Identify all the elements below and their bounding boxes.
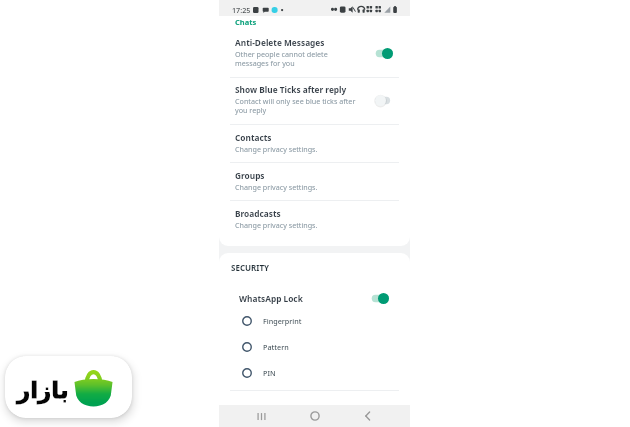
- button[interactable]: Bazaar: [5, 356, 132, 418]
- staticText: Contact will only see blue ticks after y…: [235, 96, 356, 116]
- button[interactable]: Recents: [250, 405, 272, 427]
- staticText: Change privacy settings.: [235, 144, 318, 154]
- button[interactable]: Show Blue Ticks after reply: [219, 78, 410, 124]
- button[interactable]: Broadcasts: [219, 201, 410, 238]
- staticText: Groups: [235, 170, 265, 181]
- staticText: Anti-Delete Messages: [235, 37, 325, 48]
- staticText: Pattern: [263, 342, 289, 352]
- button[interactable]: Groups: [219, 163, 410, 200]
- button[interactable]: Home: [304, 405, 326, 427]
- staticText: WhatsApp Lock: [239, 293, 371, 304]
- button[interactable]: Anti-Delete Messages: [219, 31, 410, 77]
- staticText: Chats: [235, 17, 257, 27]
- staticText: SECURITY: [231, 262, 270, 273]
- button[interactable]: PIN: [219, 360, 410, 386]
- button[interactable]: On: [375, 48, 393, 59]
- staticText: Change privacy settings.: [235, 182, 318, 192]
- staticText: Change privacy settings.: [235, 220, 318, 230]
- button[interactable]: Off: [375, 95, 393, 106]
- button[interactable]: Contacts: [219, 125, 410, 162]
- button[interactable]: Back: [357, 405, 379, 427]
- staticText: بازار: [17, 377, 69, 404]
- staticText: 17:25: [232, 5, 251, 14]
- staticText: Other people cannot delete messages for …: [235, 49, 328, 69]
- staticText: Broadcasts: [235, 208, 281, 219]
- staticText: Contacts: [235, 132, 272, 143]
- button[interactable]: On: [371, 293, 389, 304]
- button[interactable]: WhatsApp Lock: [219, 293, 410, 304]
- staticText: Show Blue Ticks after reply: [235, 84, 347, 95]
- staticText: Fingerprint: [263, 316, 302, 326]
- staticText: PIN: [263, 368, 276, 378]
- button[interactable]: Fingerprint: [219, 308, 410, 334]
- button[interactable]: Pattern: [219, 334, 410, 360]
